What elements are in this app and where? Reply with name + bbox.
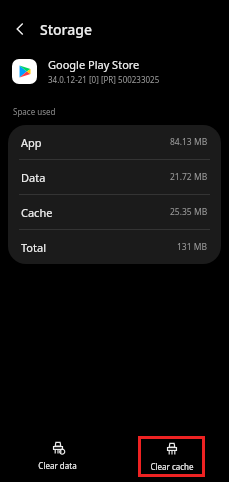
staticText: 21.72 MB <box>170 171 208 183</box>
button[interactable]: App <box>8 125 221 159</box>
button[interactable]: Total <box>8 230 221 264</box>
button[interactable]: Clear data <box>0 430 114 482</box>
staticText: Storage <box>40 20 92 39</box>
staticText: Clear data <box>38 460 77 471</box>
staticText: Total <box>21 240 46 255</box>
staticText: Space used <box>13 106 56 117</box>
staticText: 131 MB <box>177 241 208 253</box>
staticText: 34.0.12-21 [0] [PR] 500233025 <box>48 74 160 85</box>
staticText: Cache <box>21 205 53 220</box>
staticText: 25.35 MB <box>170 206 208 218</box>
staticText: 84.13 MB <box>170 136 208 148</box>
staticText: Clear cache <box>150 461 194 472</box>
staticText: App <box>21 135 42 150</box>
button[interactable]: Clear cache <box>138 436 205 477</box>
staticText: Data <box>21 170 46 185</box>
button[interactable]: Back <box>6 15 34 43</box>
button[interactable]: Data <box>8 160 221 194</box>
button[interactable]: Cache <box>8 195 221 229</box>
staticText: Google Play Store <box>48 57 140 72</box>
